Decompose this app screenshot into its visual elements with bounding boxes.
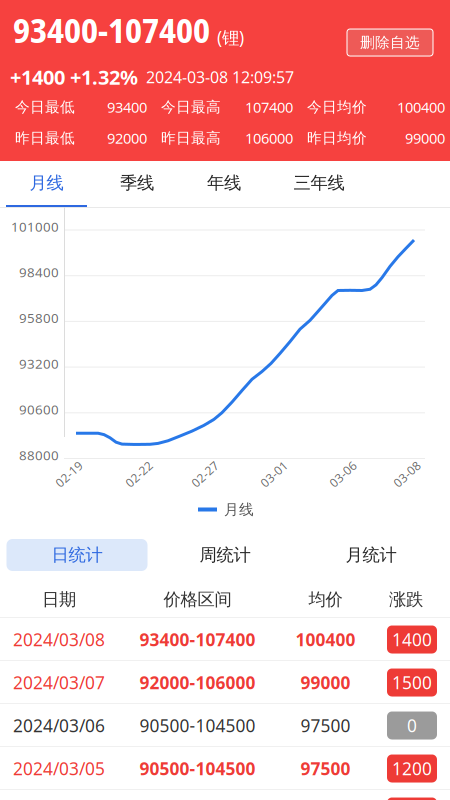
staticText: 02-19 — [53, 466, 85, 482]
staticText: 02-27 — [189, 466, 221, 482]
staticText: 100400 — [397, 97, 445, 117]
staticText: 92000-106000 — [139, 671, 255, 694]
staticText: 93400-107400 — [13, 7, 210, 53]
button[interactable]: 删除自选 — [347, 29, 433, 56]
staticText: 年线 — [207, 172, 241, 194]
staticText: 三年线 — [293, 172, 344, 194]
staticText: 101000 — [11, 218, 59, 235]
staticText: 月线 — [29, 172, 63, 194]
button[interactable]: 周统计 — [165, 539, 285, 571]
button[interactable]: 日统计 — [6, 539, 147, 571]
staticText: 2024/03/07 — [13, 671, 105, 694]
staticText: 90500-104500 — [139, 714, 255, 737]
staticText: 99000 — [300, 671, 350, 694]
staticText: 1500 — [392, 671, 432, 694]
staticText: 100400 — [295, 628, 355, 651]
button[interactable]: 月线 — [0, 161, 98, 205]
staticText: 月统计 — [345, 544, 396, 566]
staticText: 1200 — [392, 757, 432, 780]
staticText: 1400 — [392, 628, 432, 651]
button[interactable]: 季线 — [85, 161, 189, 205]
staticText: 03-08 — [391, 466, 423, 482]
staticText: 93400 — [107, 97, 147, 117]
staticText: 106000 — [245, 128, 293, 148]
staticText: 2024/03/05 — [13, 757, 105, 780]
staticText: 价格区间 — [163, 589, 231, 610]
staticText: 99000 — [405, 128, 445, 148]
staticText: 均价 — [308, 589, 342, 610]
staticText: 2024/03/08 — [13, 628, 105, 651]
staticText: 今日最低 — [15, 98, 75, 116]
staticText: 88000 — [19, 446, 59, 464]
staticText: 今日均价 — [307, 98, 367, 116]
staticText: 90600 — [19, 400, 59, 418]
staticText: 2024-03-08 12:09:57 — [146, 66, 294, 88]
staticText: 今日最高 — [161, 98, 221, 116]
staticText: 删除自选 — [360, 33, 420, 51]
staticText: 日期 — [42, 589, 76, 610]
staticText: 93200 — [19, 355, 59, 372]
button[interactable]: 年线 — [172, 161, 276, 205]
staticText: 0 — [407, 714, 417, 737]
staticText: 涨跌 — [389, 589, 423, 610]
staticText: (锂) — [217, 26, 244, 49]
staticText: 93400-107400 — [139, 628, 255, 651]
staticText: 昨日最低 — [15, 129, 75, 147]
staticText: 周统计 — [199, 544, 250, 566]
staticText: 昨日最高 — [161, 129, 221, 147]
staticText: 日统计 — [51, 544, 102, 566]
staticText: 97500 — [300, 714, 350, 737]
staticText: 03-01 — [258, 466, 290, 482]
staticText: 95800 — [19, 309, 59, 327]
staticText: 97500 — [300, 757, 350, 780]
staticText: 92000 — [107, 128, 147, 148]
button[interactable]: 月统计 — [311, 539, 431, 571]
staticText: 03-06 — [327, 466, 359, 482]
staticText: 昨日均价 — [307, 129, 367, 147]
staticText: 98400 — [19, 263, 59, 281]
staticText: 02-22 — [123, 466, 155, 482]
staticText: 90500-104500 — [139, 757, 255, 780]
staticText: +1400 +1.32% — [10, 64, 138, 90]
staticText: 107400 — [245, 97, 293, 117]
button[interactable]: 三年线 — [267, 161, 371, 205]
staticText: 季线 — [120, 172, 154, 194]
staticText: 月线 — [224, 500, 254, 518]
staticText: 2024/03/06 — [13, 714, 105, 737]
